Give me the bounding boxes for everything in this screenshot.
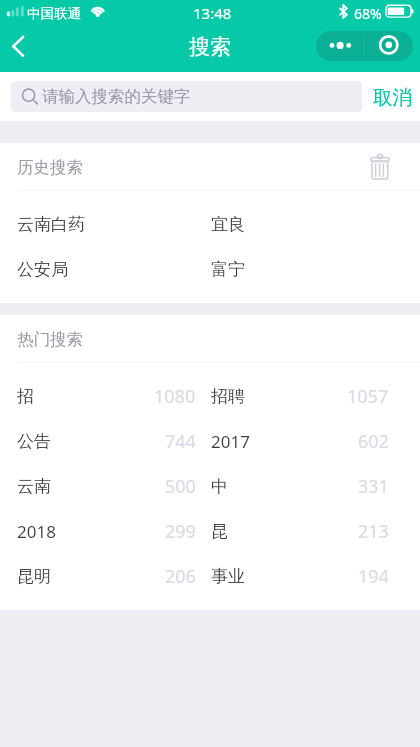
button[interactable]: 公告: [0, 419, 210, 464]
staticText: 194: [358, 564, 389, 589]
staticText: 中国联通: [27, 5, 81, 22]
staticText: 云南白药: [17, 214, 85, 235]
staticText: 宜良: [211, 214, 245, 235]
staticText: 2018: [17, 520, 56, 543]
staticText: 云南: [17, 476, 51, 497]
staticText: 招聘: [211, 386, 245, 407]
staticText: 13:48: [193, 3, 232, 23]
button[interactable]: 取消: [368, 78, 416, 116]
staticText: 299: [165, 519, 196, 544]
button[interactable]: Close mini program: [364, 31, 413, 61]
staticText: 取消: [373, 85, 412, 110]
staticText: 331: [358, 474, 389, 499]
staticText: 中: [211, 476, 228, 497]
staticText: 富宁: [211, 259, 245, 280]
staticText: 2017: [211, 430, 250, 453]
staticText: 206: [165, 564, 196, 589]
button[interactable]: 富宁: [210, 247, 420, 292]
staticText: 68%: [354, 4, 382, 23]
button[interactable]: 请输入搜索的关键字: [11, 81, 362, 112]
button[interactable]: 云南白药: [0, 202, 210, 247]
button[interactable]: 2017: [210, 419, 420, 464]
staticText: 744: [165, 429, 196, 454]
button[interactable]: 公安局: [0, 247, 210, 292]
staticText: 热门搜索: [17, 329, 83, 350]
staticText: 昆明: [17, 566, 51, 587]
staticText: 历史搜索: [17, 157, 83, 178]
button[interactable]: 事业: [210, 554, 420, 599]
staticText: 搜索: [189, 34, 231, 60]
staticText: 事业: [211, 566, 245, 587]
button[interactable]: 昆: [210, 509, 420, 554]
button[interactable]: 招聘: [210, 374, 420, 419]
staticText: 昆: [211, 521, 228, 542]
staticText: 公安局: [17, 259, 68, 280]
button[interactable]: 中: [210, 464, 420, 509]
staticText: 招: [17, 386, 34, 407]
button[interactable]: 昆明: [0, 554, 210, 599]
staticText: 1080: [154, 384, 196, 409]
staticText: 500: [165, 474, 196, 499]
button[interactable]: More options: [316, 31, 364, 61]
staticText: 213: [358, 519, 389, 544]
button[interactable]: 2018: [0, 509, 210, 554]
staticText: 602: [358, 429, 389, 454]
button[interactable]: Back: [0, 27, 40, 71]
staticText: 请输入搜索的关键字: [42, 86, 191, 107]
button[interactable]: 招: [0, 374, 210, 419]
staticText: 1057: [347, 384, 389, 409]
staticText: 公告: [17, 431, 51, 452]
button[interactable]: 云南: [0, 464, 210, 509]
button[interactable]: 宜良: [210, 202, 420, 247]
button[interactable]: Clear search history: [356, 148, 404, 186]
